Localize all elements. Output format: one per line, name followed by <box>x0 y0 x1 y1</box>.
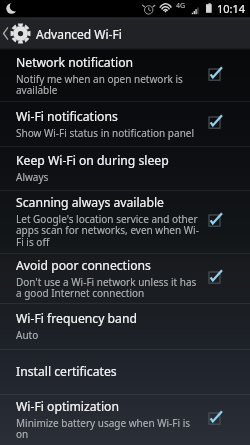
staticText: Scanning always available <box>16 194 164 211</box>
button[interactable]: Navigate up, Advanced Wi-Fi <box>0 17 250 50</box>
button[interactable]: Keep Wi-Fi on during sleep <box>0 146 250 190</box>
staticText: Network notification <box>16 54 134 71</box>
staticText: Show Wi-Fi status in notification panel <box>16 126 195 140</box>
staticText: 4G <box>176 1 186 11</box>
button[interactable]: Wi-Fi frequency band <box>0 303 250 349</box>
staticText: Keep Wi-Fi on during sleep <box>16 152 169 169</box>
button[interactable]: Network notification <box>0 50 250 101</box>
button[interactable]: Wi-Fi notifications <box>0 101 250 146</box>
staticText: Minimize battery usage when Wi-Fi is on <box>16 416 200 441</box>
staticText: Notify me when an open network is availa… <box>16 72 200 97</box>
staticText: Advanced Wi-Fi <box>36 26 122 42</box>
staticText: Wi-Fi notifications <box>16 108 118 125</box>
button[interactable]: Avoid poor connections <box>0 253 250 303</box>
staticText: Always <box>16 170 49 184</box>
staticText: Don't use a Wi-Fi network unless it has … <box>16 275 200 300</box>
button[interactable]: Scanning always available <box>0 190 250 253</box>
staticText: Wi-Fi frequency band <box>16 310 137 327</box>
staticText: Auto <box>16 328 39 342</box>
button[interactable]: Wi-Fi optimization <box>0 394 250 445</box>
staticText: Avoid poor connections <box>16 257 151 274</box>
staticText: Wi-Fi optimization <box>16 398 120 415</box>
staticText: 10:14 <box>217 1 246 16</box>
button[interactable]: Install certificates <box>0 349 250 394</box>
staticText: Install certificates <box>16 363 117 380</box>
staticText: Let Google's location service and other … <box>16 212 200 249</box>
